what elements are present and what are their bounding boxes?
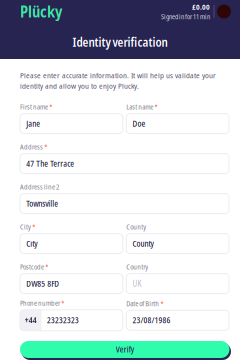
staticText: Jane: [26, 118, 40, 129]
staticText: UK: [132, 278, 141, 289]
staticText: +44: [25, 315, 37, 326]
button[interactable]: Country: [126, 262, 229, 294]
button[interactable]: City: [20, 222, 123, 254]
button[interactable]: Account: [217, 4, 231, 18]
staticText: Address: [20, 142, 43, 152]
button[interactable]: Verify: [20, 340, 229, 359]
staticText: Identity verification: [72, 34, 167, 50]
button[interactable]: Last name: [126, 102, 229, 134]
staticText: *: [49, 102, 52, 112]
button[interactable]: Phone number: [20, 298, 123, 331]
staticText: *: [32, 222, 35, 232]
staticText: *: [61, 298, 64, 308]
staticText: Townsville: [26, 198, 58, 209]
staticText: 23/08/1986: [132, 315, 170, 326]
staticText: City: [20, 222, 31, 232]
staticText: Phone number: [20, 298, 60, 308]
button[interactable]: County: [126, 222, 229, 254]
staticText: First name: [20, 102, 48, 112]
staticText: *: [160, 299, 163, 308]
staticText: *: [154, 102, 157, 112]
staticText: City: [26, 238, 37, 249]
staticText: *: [45, 262, 48, 272]
staticText: £0.00: [192, 2, 210, 12]
button[interactable]: Address: [20, 142, 229, 174]
button[interactable]: First name: [20, 102, 123, 134]
button[interactable]: Plucky home: [20, 1, 62, 22]
staticText: 23232323: [47, 315, 79, 326]
staticText: Postcode: [20, 262, 44, 272]
staticText: Country: [126, 262, 148, 272]
button[interactable]: Address line 2: [20, 182, 229, 214]
button[interactable]: Postcode: [20, 262, 123, 294]
staticText: 47 The Terrace: [26, 158, 74, 169]
staticText: Address line 2: [20, 182, 59, 192]
staticText: Last name: [126, 102, 153, 112]
staticText: Plücky: [20, 1, 62, 22]
staticText: *: [44, 142, 47, 152]
staticText: County: [126, 222, 146, 232]
staticText: Date of Birth: [126, 299, 159, 308]
staticText: Please enter accurate information. It wi…: [20, 70, 216, 91]
button[interactable]: Date of Birth: [126, 299, 229, 330]
staticText: DW85 8FD: [26, 278, 59, 289]
staticText: Doe: [132, 118, 145, 129]
staticText: Signed in for 11 min: [161, 12, 210, 21]
staticText: Verify: [116, 344, 134, 355]
staticText: County: [132, 238, 153, 249]
